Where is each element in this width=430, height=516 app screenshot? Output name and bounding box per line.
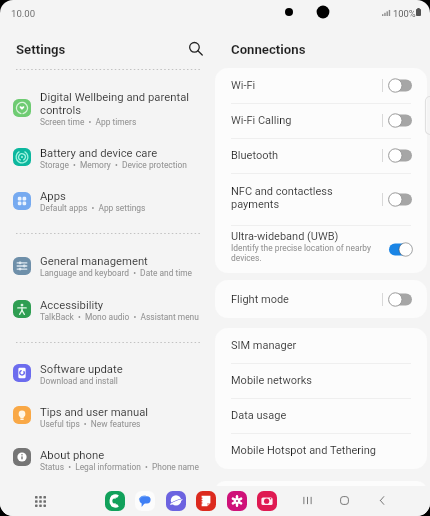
button[interactable]: Switch off: [389, 192, 413, 207]
staticText: Download and install: [40, 376, 118, 386]
staticText: Connections: [231, 42, 306, 57]
button[interactable]: Apps: [6, 187, 212, 217]
button[interactable]: Switch off: [389, 78, 413, 93]
staticText: Identify the precise location of nearby …: [231, 243, 371, 263]
staticText: Default apps • App settings: [40, 203, 146, 213]
button[interactable]: Tips and user manual: [6, 403, 212, 433]
staticText: Useful tips • New features: [40, 419, 141, 429]
button[interactable]: SIM manager: [215, 328, 427, 363]
staticText: General management: [40, 255, 148, 268]
staticText: Software update: [40, 363, 123, 376]
button[interactable]: Switch off: [389, 148, 413, 163]
staticText: Digital Wellbeing and parental controls: [40, 91, 190, 117]
button[interactable]: Recents: [297, 490, 317, 510]
staticText: SIM manager: [231, 339, 297, 352]
button[interactable]: Notes: [196, 491, 216, 511]
staticText: Status • Legal information • Phone name: [40, 462, 199, 472]
staticText: Accessibility: [40, 299, 104, 312]
staticText: Ultra-wideband (UWB): [231, 230, 339, 243]
button[interactable]: Switch off: [389, 113, 413, 128]
button[interactable]: Internet: [166, 491, 186, 511]
staticText: Bluetooth: [231, 149, 279, 162]
button[interactable]: NFC and contactless payments: [215, 173, 427, 225]
staticText: NFC and contactless payments: [231, 185, 333, 211]
button[interactable]: Accessibility: [6, 296, 212, 326]
staticText: Screen time • App timers: [40, 117, 137, 127]
button[interactable]: Gallery: [227, 491, 247, 511]
button[interactable]: Wi-Fi Calling: [215, 103, 427, 138]
button[interactable]: About phone: [6, 445, 212, 475]
staticText: Mobile networks: [231, 374, 312, 387]
button[interactable]: Bluetooth: [215, 138, 427, 173]
staticText: Tips and user manual: [40, 406, 149, 419]
staticText: TalkBack • Mono audio • Assistant menu: [40, 312, 199, 322]
button[interactable]: Wi-Fi: [215, 68, 427, 103]
button[interactable]: Flight mode: [215, 280, 427, 318]
button[interactable]: Data usage: [215, 398, 427, 433]
button[interactable]: Digital Wellbeing and parental controls: [6, 88, 212, 131]
staticText: Data usage: [231, 409, 287, 422]
button[interactable]: Software update: [6, 360, 212, 390]
staticText: About phone: [40, 449, 105, 462]
staticText: Apps: [40, 190, 66, 203]
button[interactable]: General management: [6, 252, 212, 282]
button[interactable]: Search: [183, 36, 207, 60]
button[interactable]: Switch off: [389, 292, 413, 307]
staticText: 100%: [393, 8, 416, 19]
button[interactable]: Messages: [135, 491, 155, 511]
button[interactable]: Back: [372, 490, 392, 510]
button[interactable]: Mobile networks: [215, 363, 427, 398]
staticText: Settings: [16, 42, 66, 57]
button[interactable]: Home: [334, 490, 354, 510]
button[interactable]: Battery and device care: [6, 144, 212, 174]
staticText: Storage • Memory • Device protection: [40, 160, 187, 170]
button[interactable]: Ultra-wideband (UWB): [215, 225, 427, 273]
staticText: 10.00: [11, 8, 36, 19]
staticText: Wi-Fi: [231, 79, 256, 92]
staticText: Language and keyboard • Date and time: [40, 268, 193, 278]
staticText: Flight mode: [231, 293, 289, 306]
button[interactable]: Switch on: [389, 242, 413, 257]
button[interactable]: Mobile Hotspot and Tethering: [215, 433, 427, 468]
staticText: Mobile Hotspot and Tethering: [231, 444, 376, 457]
staticText: Wi-Fi Calling: [231, 114, 292, 127]
staticText: Battery and device care: [40, 147, 158, 160]
button[interactable]: Phone: [105, 491, 125, 511]
button[interactable]: All apps: [30, 491, 50, 511]
button[interactable]: Camera: [257, 491, 277, 511]
